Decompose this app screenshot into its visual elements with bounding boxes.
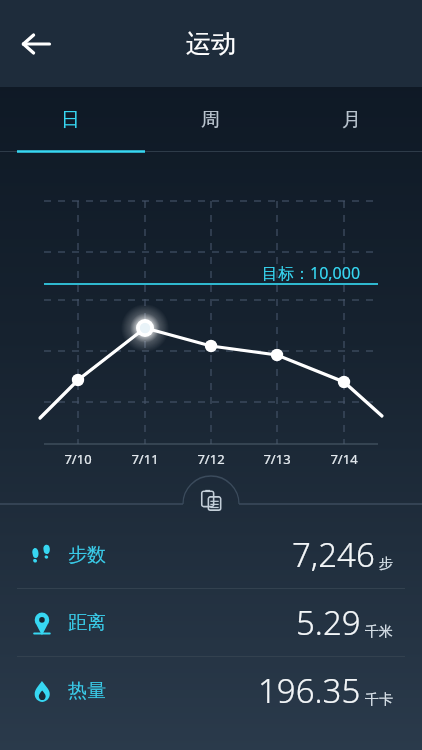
staticText: 7/10 [64,450,92,468]
staticText: 5.29 [296,600,361,645]
button[interactable]: 距离 [0,589,422,656]
staticText: 步数 [68,543,106,567]
staticText: 距离 [68,611,106,635]
staticText: 目标：10,000 [262,262,361,284]
staticText: 7/11 [131,450,159,468]
button[interactable]: 步数 [0,521,422,588]
staticText: 千卡 [365,691,393,709]
button[interactable]: Copy [189,483,233,517]
staticText: 步 [379,555,393,573]
staticText: 日 [61,108,80,132]
staticText: 周 [201,108,220,132]
staticText: 7/13 [263,450,291,468]
staticText: 千米 [365,623,393,641]
staticText: 7/12 [197,450,225,468]
staticText: 运动 [186,28,236,59]
staticText: 196.35 [258,668,361,713]
button[interactable]: 日 [0,87,140,153]
staticText: 热量 [68,679,106,703]
button[interactable]: 周 [140,87,281,153]
button[interactable]: 热量 [0,657,422,724]
staticText: 7,246 [292,532,375,577]
button[interactable]: Back [8,16,64,72]
button[interactable]: 月 [281,87,422,153]
staticText: 7/14 [330,450,358,468]
staticText: 月 [342,108,361,132]
